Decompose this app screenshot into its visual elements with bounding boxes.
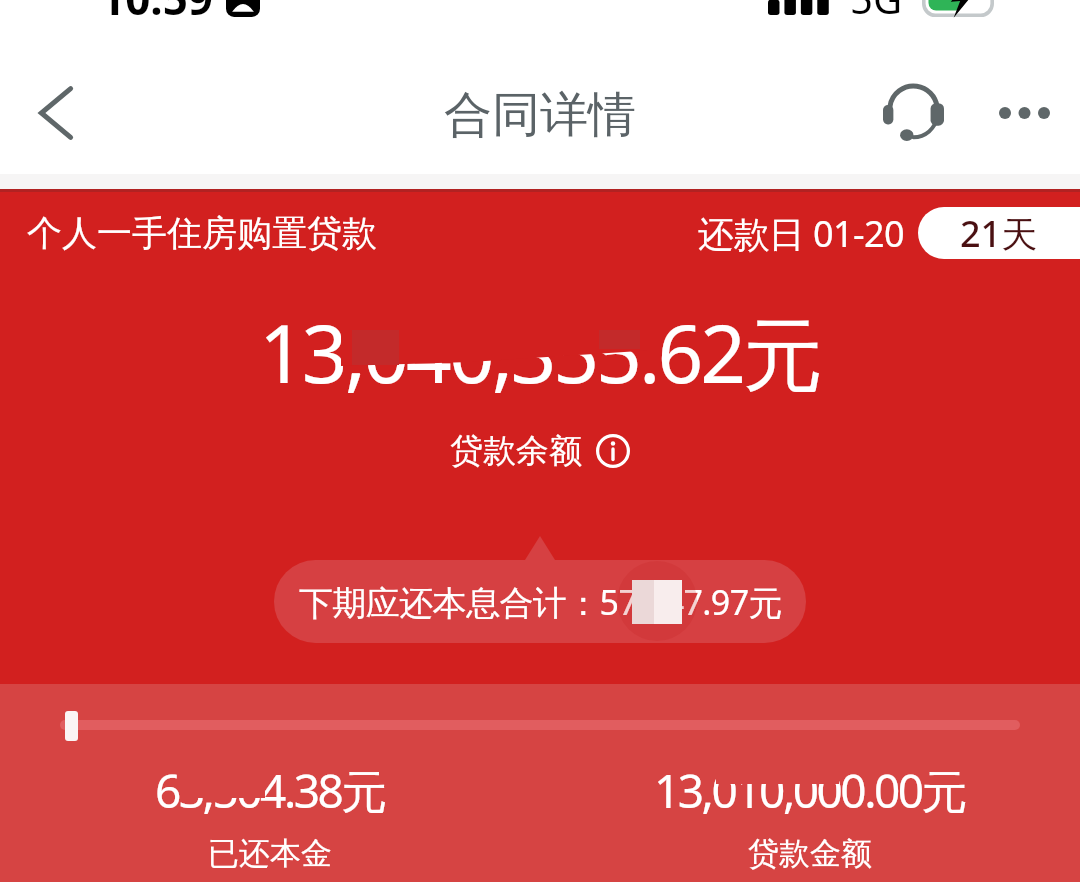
staticText: 5G bbox=[850, 0, 902, 25]
staticText: 贷款金额 bbox=[748, 834, 872, 873]
button[interactable]: Back bbox=[9, 66, 103, 160]
staticText: 21天 bbox=[960, 209, 1038, 258]
staticText: 10:59 bbox=[100, 0, 214, 28]
button[interactable]: 下期应还本息合计：57,147.97元 bbox=[274, 560, 806, 643]
staticText: 下期应还本息合计：57,147.97元 bbox=[299, 579, 782, 625]
staticText: 个人一手住房购置贷款 bbox=[27, 211, 377, 255]
button[interactable]: Customer service bbox=[863, 63, 963, 163]
staticText: 13,010,000.00元 bbox=[654, 759, 966, 822]
button[interactable]: 21天 bbox=[918, 207, 1080, 259]
staticText: 63,504.38元 bbox=[155, 759, 385, 822]
staticText: 贷款余额 bbox=[450, 430, 582, 472]
staticText: 合同详情 bbox=[444, 85, 636, 145]
staticText: 还款日 01-20 bbox=[698, 209, 904, 258]
button[interactable]: More options bbox=[974, 63, 1074, 163]
button[interactable]: Balance info bbox=[596, 434, 630, 468]
staticText: 已还本金 bbox=[208, 834, 332, 873]
staticText: 13,040,355.62元 bbox=[259, 297, 821, 406]
